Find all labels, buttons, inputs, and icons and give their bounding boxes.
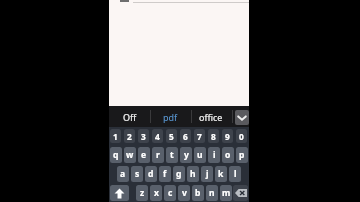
staticText: p	[239, 149, 245, 161]
button[interactable]: 2	[124, 129, 135, 143]
staticText: 3	[141, 131, 146, 142]
staticText: t	[170, 149, 174, 161]
button[interactable]: 9	[222, 129, 233, 143]
button[interactable]: e	[138, 147, 150, 163]
staticText: o	[225, 149, 231, 161]
button[interactable]: o	[222, 147, 234, 163]
staticText: 2	[127, 131, 132, 142]
button[interactable]: 5	[166, 129, 177, 143]
button[interactable]: office	[195, 109, 227, 124]
button[interactable]: h	[187, 166, 199, 182]
staticText: i	[213, 149, 216, 161]
button[interactable]: a	[117, 166, 129, 182]
staticText: l	[234, 168, 237, 180]
button[interactable]: 7	[194, 129, 205, 143]
button[interactable]: w	[124, 147, 136, 163]
staticText: 6	[183, 131, 188, 142]
button[interactable]: u	[194, 147, 206, 163]
staticText: s	[135, 168, 140, 180]
staticText: w	[126, 149, 134, 161]
button[interactable]: n	[206, 185, 218, 201]
button[interactable]: q	[110, 147, 122, 163]
button[interactable]: t	[166, 147, 178, 163]
staticText: 5	[169, 131, 174, 142]
staticText: office	[199, 111, 223, 123]
staticText: v	[182, 187, 187, 199]
button[interactable]: l	[229, 166, 241, 182]
staticText: x	[154, 187, 159, 199]
staticText: f	[163, 168, 167, 180]
button[interactable]: 3	[138, 129, 149, 143]
staticText: c	[168, 187, 173, 199]
button[interactable]: 8	[208, 129, 219, 143]
button[interactable]: x	[150, 185, 162, 201]
button[interactable]: p	[236, 147, 248, 163]
button[interactable]: m	[220, 185, 232, 201]
staticText: r	[156, 149, 160, 161]
staticText: Off	[123, 111, 137, 123]
button[interactable]: r	[152, 147, 164, 163]
staticText: a	[120, 168, 126, 180]
staticText: m	[222, 187, 231, 199]
staticText: y	[184, 149, 189, 161]
button[interactable]: v	[178, 185, 190, 201]
button[interactable]: pdf	[155, 109, 185, 124]
button[interactable]: y	[180, 147, 192, 163]
button[interactable]	[110, 185, 129, 201]
staticText: j	[206, 168, 209, 180]
button[interactable]	[235, 110, 249, 125]
button[interactable]: g	[173, 166, 185, 182]
staticText: h	[190, 168, 196, 180]
staticText: 1	[113, 131, 118, 142]
staticText: 7	[197, 131, 202, 142]
button[interactable]: k	[215, 166, 227, 182]
staticText: z	[140, 187, 145, 199]
button[interactable]: z	[136, 185, 148, 201]
button[interactable]: Off	[114, 109, 145, 124]
button[interactable]: 0	[236, 129, 247, 143]
button[interactable]: 6	[180, 129, 191, 143]
staticText: 9	[225, 131, 230, 142]
button[interactable]: d	[145, 166, 157, 182]
staticText: k	[218, 168, 224, 180]
button[interactable]: b	[192, 185, 204, 201]
staticText: 0	[239, 131, 244, 142]
staticText: 8	[211, 131, 216, 142]
staticText: n	[209, 187, 215, 199]
staticText: q	[113, 149, 119, 161]
staticText: d	[148, 168, 154, 180]
button[interactable]	[233, 185, 248, 201]
staticText: pdf	[163, 111, 178, 123]
button[interactable]: f	[159, 166, 171, 182]
button[interactable]: s	[131, 166, 143, 182]
staticText: e	[141, 149, 147, 161]
staticText: g	[176, 168, 182, 180]
staticText: 4	[155, 131, 160, 142]
button[interactable]: 4	[152, 129, 163, 143]
staticText: b	[195, 187, 201, 199]
staticText: u	[197, 149, 203, 161]
button[interactable]: j	[201, 166, 213, 182]
button[interactable]: i	[208, 147, 220, 163]
button[interactable]: 1	[110, 129, 121, 143]
button[interactable]: c	[164, 185, 176, 201]
